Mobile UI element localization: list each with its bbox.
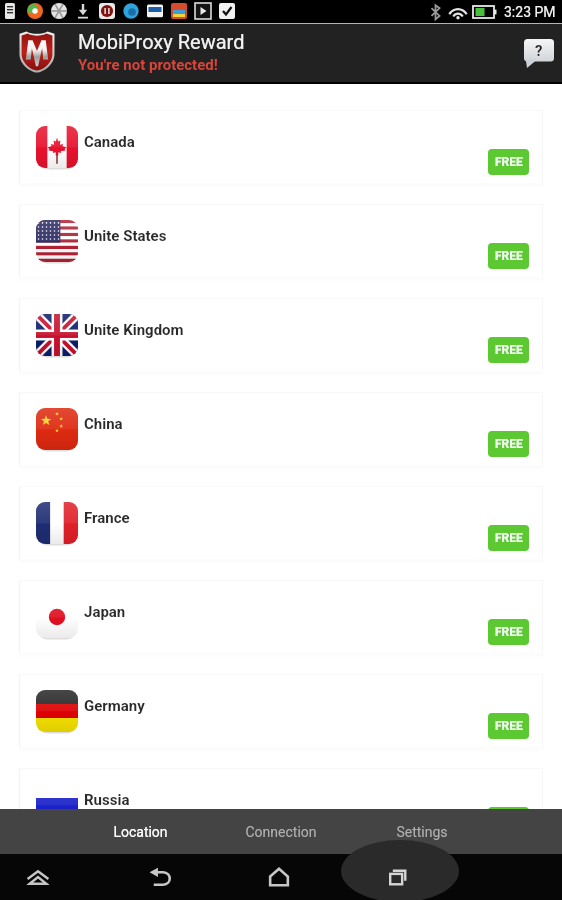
button[interactable]: FREE [488,431,529,457]
staticText: You're not protected! [78,56,218,74]
staticText: Russia [84,791,130,809]
staticText: FREE [495,343,523,357]
button[interactable]: FREE [488,337,529,363]
staticText: Unite Kingdom [84,321,184,339]
staticText: Unite States [84,227,167,245]
staticText: Location [113,824,168,840]
button[interactable]: Home [256,854,302,900]
button[interactable]: Location [70,809,210,854]
staticText: China [84,415,123,433]
button[interactable]: FREE [488,713,529,739]
staticText: FREE [495,155,523,169]
button[interactable]: Settings [351,809,492,854]
staticText: France [84,509,130,527]
staticText: FREE [495,249,523,263]
button[interactable]: Unite States [19,204,543,278]
button[interactable]: FREE [488,619,529,645]
button[interactable]: Recents [375,854,421,900]
button[interactable]: Russia [19,768,543,842]
button[interactable]: Back [137,854,183,900]
staticText: 3:23 PM [504,4,556,20]
button[interactable]: FREE [488,807,529,833]
staticText: Canada [84,133,135,151]
staticText: FREE [495,719,523,733]
staticText: FREE [495,625,523,639]
staticText: Connection [245,824,317,840]
button[interactable]: FREE [488,149,529,175]
staticText: Germany [84,697,145,715]
staticText: MobiProxy Reward [78,30,245,53]
button[interactable]: China [19,392,543,466]
button[interactable]: Germany [19,674,543,748]
button[interactable]: France [19,486,543,560]
button[interactable]: Up [15,854,61,900]
button[interactable]: Unite Kingdom [19,298,543,372]
button[interactable]: Canada [19,110,543,184]
staticText: ? [535,42,543,60]
staticText: FREE [495,437,523,451]
button[interactable]: FREE [488,243,529,269]
staticText: Settings [396,824,448,840]
button[interactable]: Japan [19,580,543,654]
button[interactable]: FREE [488,525,529,551]
button[interactable]: Help [524,39,558,73]
staticText: Japan [84,603,126,621]
staticText: FREE [495,531,523,545]
button[interactable]: Connection [210,809,351,854]
